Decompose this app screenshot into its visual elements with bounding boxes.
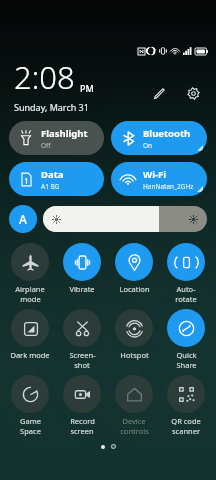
staticText: controls [120,426,149,436]
staticText: Space [20,426,41,436]
staticText: Flashlight [41,127,88,140]
staticText: Device [122,416,146,426]
button[interactable]: Data [9,162,104,196]
button[interactable] [115,309,153,347]
staticText: Bluetooth [143,127,191,140]
button[interactable] [63,309,101,347]
staticText: Location [119,284,150,294]
staticText: QR code [171,416,201,426]
staticText: Data [41,168,64,181]
staticText: Hotspot [120,350,149,360]
staticText: Vibrate [69,284,95,294]
staticText: Record [70,416,95,426]
button[interactable] [167,243,205,281]
staticText: shot [74,360,90,370]
staticText: Dark mode [10,350,50,360]
staticText: Off [41,141,51,150]
staticText: screen [70,426,94,436]
button[interactable] [43,206,207,232]
button[interactable]: Settings [180,80,206,106]
button[interactable]: Flashlight [9,121,104,155]
staticText: rotate [175,294,197,304]
staticText: HanNatan_2GHz [143,182,194,191]
button[interactable]: Wi-Fi [111,162,207,196]
staticText: On [143,141,153,150]
button[interactable] [11,309,49,347]
staticText: scanner [172,426,200,436]
staticText: 2:08 [14,56,75,98]
button[interactable]: Bluetooth [111,121,207,155]
button[interactable] [167,375,205,413]
button[interactable]: A [9,205,37,233]
button[interactable]: Edit tiles [146,80,172,106]
button[interactable] [63,375,101,413]
button[interactable] [11,375,49,413]
staticText: PM [80,82,94,94]
button[interactable] [167,309,205,347]
button[interactable] [63,243,101,281]
staticText: Share [176,360,197,370]
staticText: Airplane [15,284,45,294]
button[interactable] [115,375,153,413]
staticText: A1 BG [41,182,60,191]
staticText: A [19,211,27,227]
staticText: mode [20,294,41,304]
button[interactable] [11,243,49,281]
staticText: Quick [176,350,197,360]
staticText: Auto- [176,284,196,294]
staticText: Screen- [69,350,96,360]
staticText: Sunday, March 31 [14,101,89,113]
staticText: Wi-Fi [143,168,167,181]
staticText: Game [20,416,41,426]
button[interactable] [115,243,153,281]
